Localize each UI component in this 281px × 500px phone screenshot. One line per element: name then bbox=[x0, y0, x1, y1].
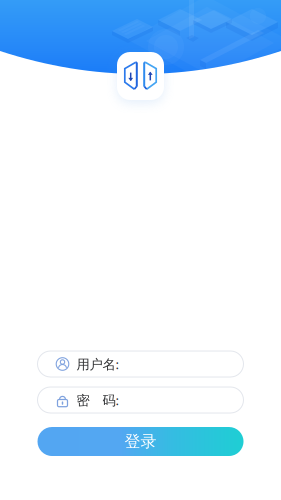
staticText: 密 码: bbox=[76, 391, 119, 409]
staticText: 用户名: bbox=[76, 355, 119, 373]
staticText: 登录 bbox=[124, 432, 156, 451]
button[interactable]: 登录 bbox=[37, 427, 243, 456]
